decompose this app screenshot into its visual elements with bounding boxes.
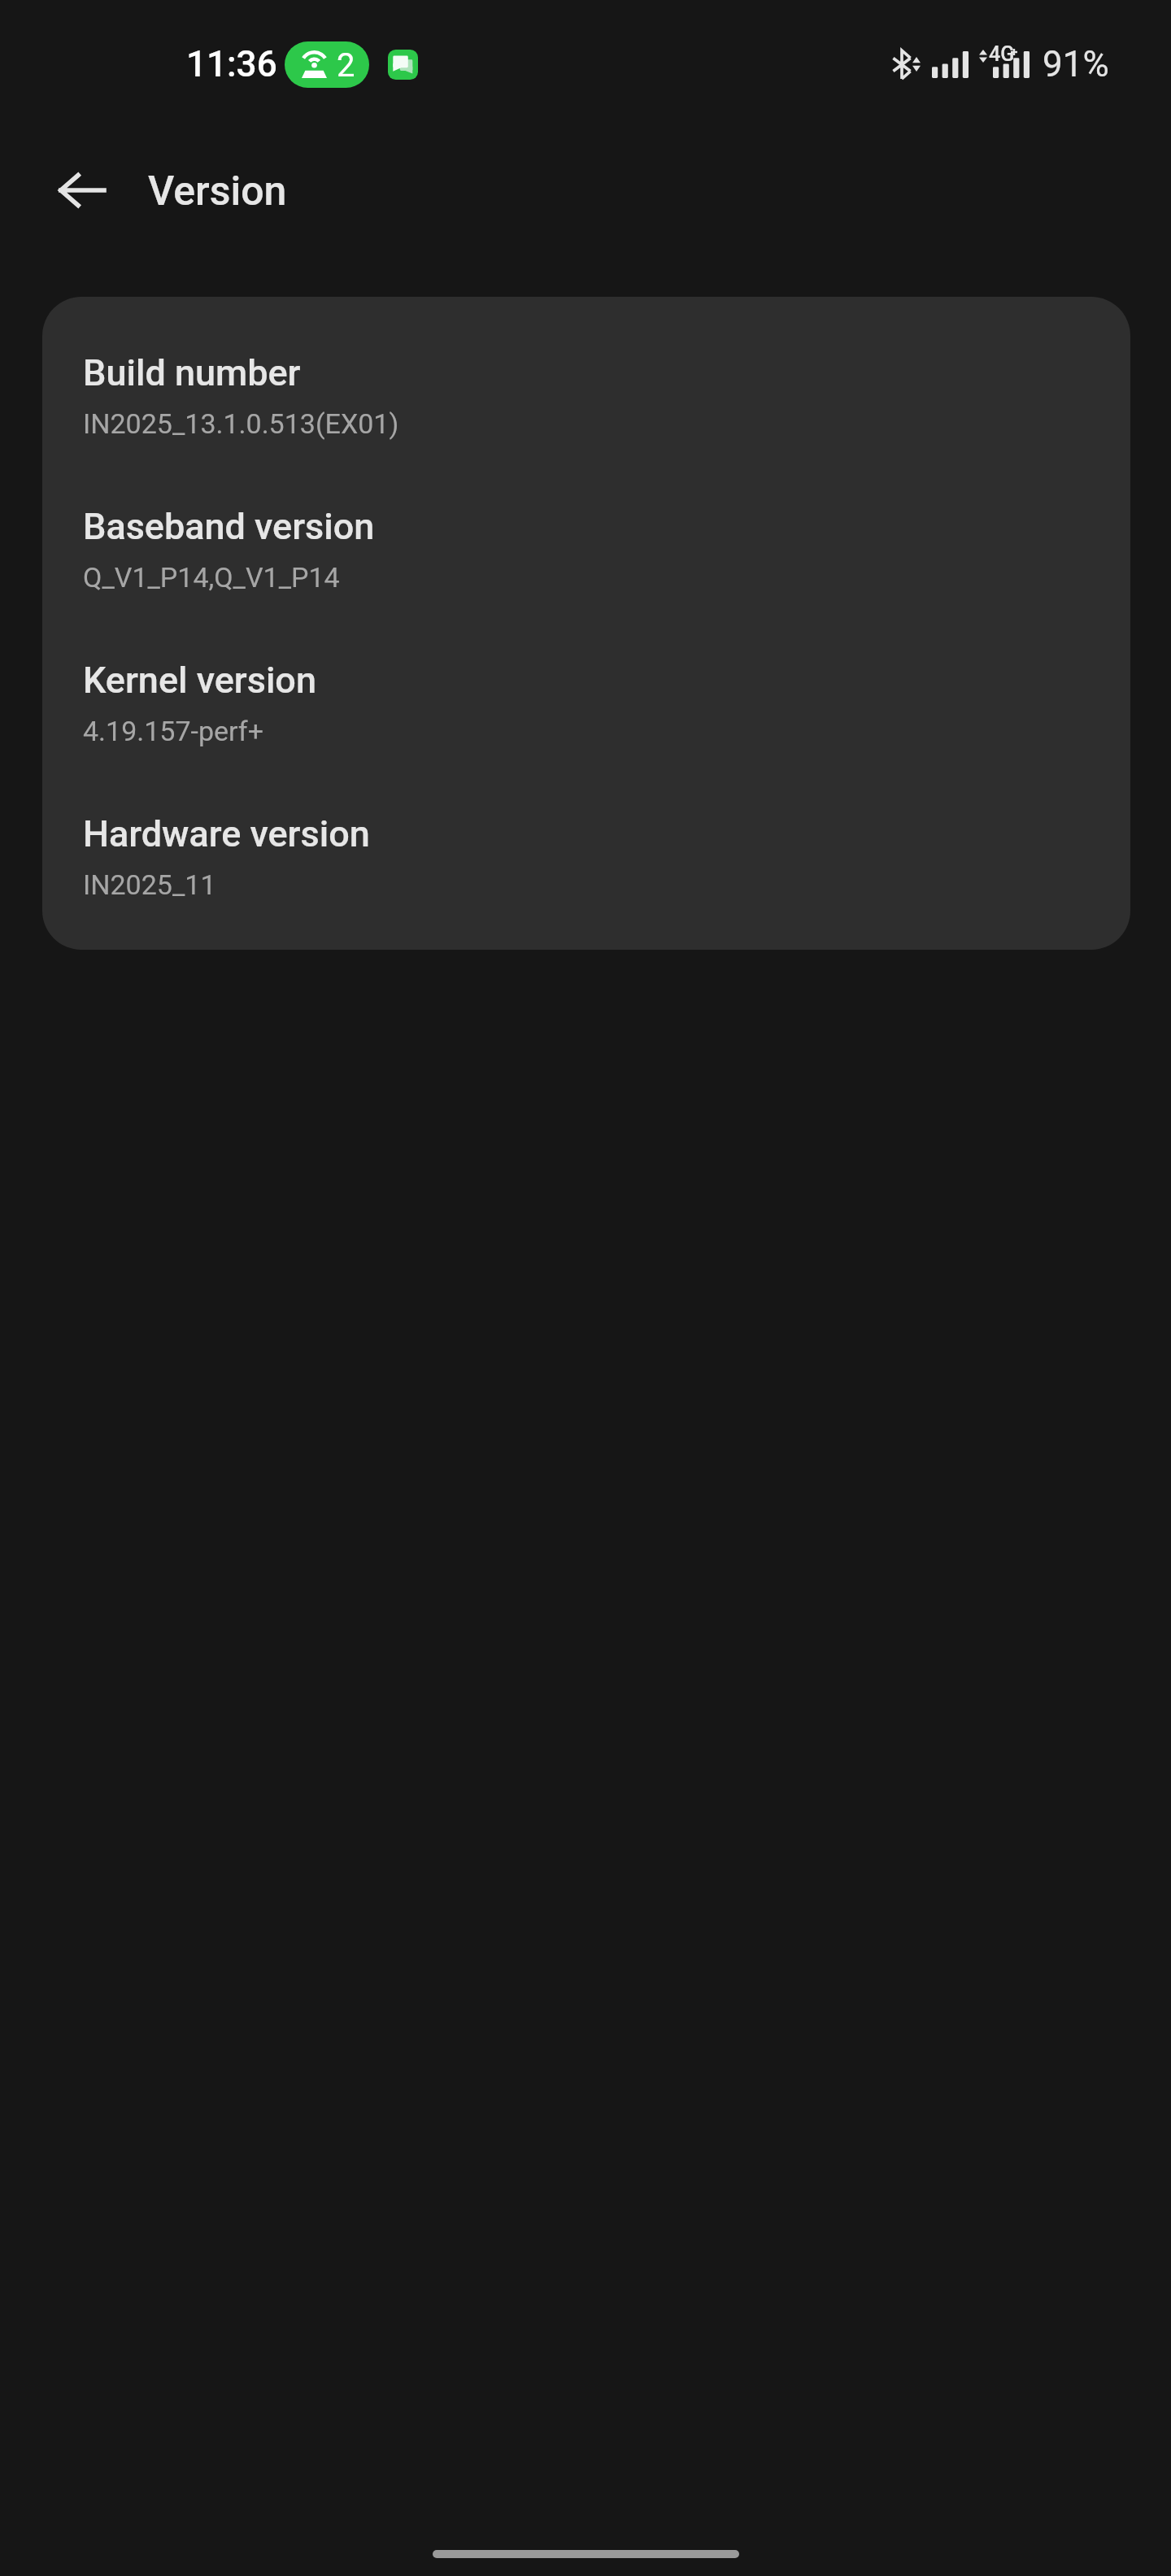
staticText: 4.19.157-perf+ (83, 715, 263, 747)
staticText: Kernel version (83, 659, 316, 702)
button[interactable]: Back (22, 131, 140, 249)
button[interactable]: Baseband version (83, 472, 1090, 626)
staticText: Baseband version (83, 505, 375, 548)
staticText: Q_V1_P14,Q_V1_P14 (83, 561, 340, 594)
staticText: Version (148, 168, 287, 215)
button[interactable]: Hardware version (83, 780, 1090, 950)
staticText: Hardware version (83, 812, 370, 855)
staticText: Build number (83, 351, 301, 394)
staticText: 91% (1043, 43, 1109, 85)
staticText: 4G (989, 42, 1015, 66)
button[interactable]: Kernel version (83, 626, 1090, 780)
staticText: IN2025_13.1.0.513(EX01) (83, 407, 399, 440)
button[interactable]: Build number (83, 297, 1090, 472)
staticText: IN2025_11 (83, 868, 216, 901)
staticText: 2 (337, 46, 355, 85)
staticText: 11:36 (186, 43, 277, 85)
